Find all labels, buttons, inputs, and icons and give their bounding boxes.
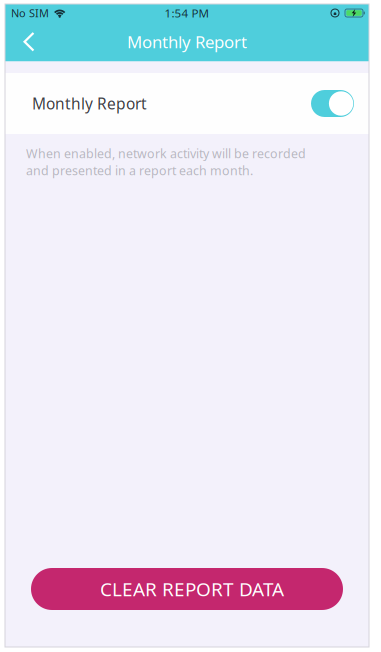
staticText: CLEAR REPORT DATA	[100, 576, 284, 602]
staticText: No SIM	[11, 6, 49, 20]
staticText: 1:54 PM	[164, 5, 209, 21]
button[interactable]: CLEAR REPORT DATA	[31, 568, 343, 610]
button[interactable]: Monthly Report	[5, 73, 369, 134]
staticText: When enabled, network activity will be r…	[26, 145, 306, 179]
staticText: Monthly Report	[127, 30, 247, 53]
staticText: Monthly Report	[32, 93, 147, 114]
button[interactable]: Back	[13, 22, 45, 61]
